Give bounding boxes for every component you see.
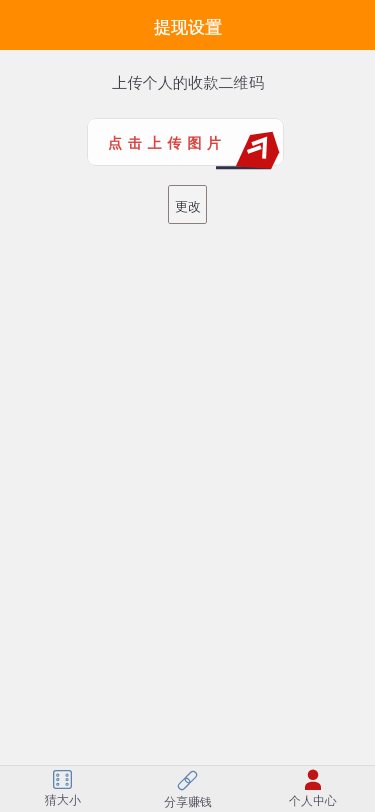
button[interactable]: 分享赚钱 [125,766,250,812]
staticText: 提现设置 [154,17,222,38]
staticText: 点击上传图片 [108,135,227,153]
button[interactable]: 个人中心 [250,766,375,812]
staticText: 上传个人的收款二维码 [112,73,264,92]
staticText: 个人中心 [289,793,337,808]
button[interactable]: 猜大小 [0,766,125,812]
other: 猜大小 [53,770,72,789]
button[interactable]: 更改 [168,185,207,224]
staticText: 更改 [175,198,201,214]
other: 分享赚钱 [177,770,198,791]
button[interactable]: 点击上传图片 [87,118,284,170]
staticText: 分享赚钱 [164,794,212,809]
other: 个人中心 [305,770,321,790]
staticText: 猜大小 [45,792,81,807]
